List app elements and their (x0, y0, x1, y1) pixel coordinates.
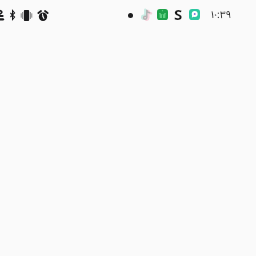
staticText: ١٠:٣٩ (211, 7, 231, 21)
staticText: S (174, 4, 183, 24)
